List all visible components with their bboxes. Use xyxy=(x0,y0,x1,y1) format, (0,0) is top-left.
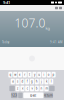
button[interactable]: r xyxy=(23,72,27,77)
staticText: 123 xyxy=(11,94,17,97)
button[interactable]: v xyxy=(30,86,34,91)
staticText: e xyxy=(19,73,21,76)
staticText: b xyxy=(36,87,38,90)
staticText: h xyxy=(36,80,38,83)
staticText: a xyxy=(12,80,13,83)
button[interactable] xyxy=(9,86,15,91)
staticText: l xyxy=(51,80,52,83)
staticText: y xyxy=(34,73,35,76)
button[interactable]: t xyxy=(27,72,32,77)
staticText: 107.0 xyxy=(14,15,45,31)
staticText: u xyxy=(38,73,40,76)
staticText: z xyxy=(17,87,18,90)
button[interactable]: c xyxy=(25,86,29,91)
staticText: Today xyxy=(2,40,9,44)
staticText: f xyxy=(27,80,28,83)
button[interactable]: s xyxy=(15,79,20,84)
button[interactable]: h xyxy=(35,79,39,84)
button[interactable] xyxy=(18,92,23,98)
staticText: q xyxy=(9,73,11,76)
button[interactable]: y xyxy=(32,72,36,77)
staticText: w xyxy=(14,73,16,76)
staticText: p xyxy=(53,73,55,76)
button[interactable]: w xyxy=(13,72,17,77)
button[interactable]: l xyxy=(49,79,53,84)
button[interactable]: b xyxy=(35,86,39,91)
button[interactable]: i xyxy=(42,72,46,77)
staticText: space xyxy=(30,94,37,97)
staticText: r xyxy=(24,73,25,76)
button[interactable]: m xyxy=(44,86,48,91)
staticText: j xyxy=(41,80,42,83)
button[interactable] xyxy=(49,86,55,91)
staticText: t xyxy=(29,73,30,76)
button[interactable]: z xyxy=(15,86,20,91)
staticText: d xyxy=(21,80,23,83)
staticText: s xyxy=(17,80,18,83)
button[interactable]: n xyxy=(39,86,44,91)
staticText: k xyxy=(46,80,47,83)
staticText: 9:41 xyxy=(3,0,10,5)
button[interactable]: p xyxy=(51,72,56,77)
button[interactable]: 123 xyxy=(11,92,17,98)
staticText: c xyxy=(27,87,28,90)
button[interactable]: e xyxy=(18,72,22,77)
staticText: n xyxy=(41,87,43,90)
button[interactable]: q xyxy=(8,72,12,77)
staticText: 9:41 AM xyxy=(50,40,62,44)
button[interactable]: u xyxy=(37,72,41,77)
staticText: o xyxy=(48,73,50,76)
button[interactable]: d xyxy=(20,79,24,84)
staticText: m xyxy=(45,87,47,90)
button[interactable]: x xyxy=(20,86,24,91)
button[interactable]: Options xyxy=(54,6,63,10)
button[interactable]: g xyxy=(30,79,34,84)
button[interactable]: return xyxy=(44,92,53,98)
button[interactable]: k xyxy=(44,79,48,84)
button[interactable]: o xyxy=(47,72,51,77)
staticText: x xyxy=(22,87,23,90)
button[interactable]: space xyxy=(23,92,43,98)
button[interactable]: j xyxy=(39,79,44,84)
button[interactable]: f xyxy=(25,79,29,84)
staticText: return xyxy=(44,94,53,97)
button[interactable]: a xyxy=(11,79,15,84)
staticText: g xyxy=(31,80,33,83)
staticText: kg xyxy=(45,26,49,31)
